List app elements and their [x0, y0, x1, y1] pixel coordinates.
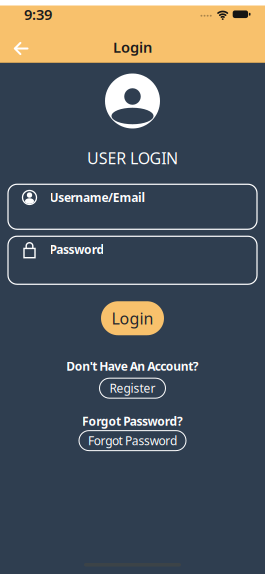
button[interactable]: Username/Email — [8, 184, 257, 229]
staticText: 9:39 — [24, 4, 52, 24]
staticText: Don't Have An Account? — [66, 358, 199, 374]
staticText: Password — [49, 241, 104, 257]
staticText: Register — [109, 380, 155, 396]
button[interactable]: Register — [99, 378, 165, 398]
staticText: USER LOGIN — [87, 147, 178, 169]
staticText: Username/Email — [49, 189, 146, 205]
button[interactable]: Password — [8, 236, 257, 284]
button[interactable]: Login — [101, 301, 164, 335]
staticText: Login — [113, 37, 152, 57]
staticText: Forgot Password — [88, 433, 177, 449]
button[interactable]: Forgot Password — [79, 431, 186, 451]
staticText: Forgot Password? — [82, 413, 183, 429]
staticText: Login — [111, 308, 153, 329]
button[interactable]: Back — [0, 34, 37, 63]
